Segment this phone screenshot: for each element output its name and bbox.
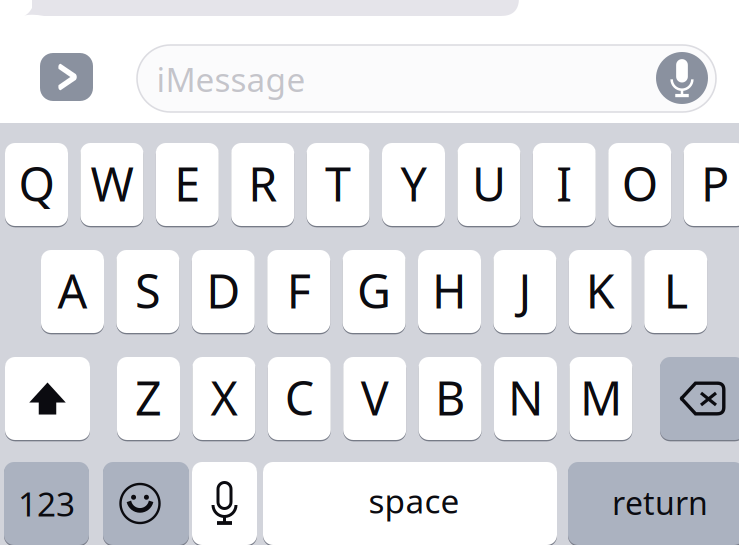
staticText: H [432,259,467,321]
button[interactable]: Dictate [656,52,708,104]
staticText: N [508,366,543,428]
staticText: space [368,478,459,523]
button[interactable]: Delete [660,357,739,440]
staticText: Z [135,366,162,428]
button[interactable]: G [343,250,406,333]
staticText: Y [400,152,426,214]
button[interactable]: A [41,250,104,333]
button[interactable]: E [156,143,219,226]
staticText: X [210,366,237,428]
staticText: T [325,152,351,214]
button[interactable]: Emoji [103,462,189,545]
staticText: E [174,152,200,214]
button[interactable]: K [569,250,632,333]
button[interactable]: V [343,357,406,440]
button[interactable]: R [231,143,294,226]
button[interactable]: N [494,357,557,440]
button[interactable]: I [533,143,596,226]
staticText: I [556,152,572,214]
button[interactable]: F [267,250,330,333]
staticText: R [248,152,277,214]
staticText: A [57,259,87,321]
button[interactable]: Q [5,143,68,226]
button[interactable]: L [644,250,707,333]
button[interactable]: W [80,143,143,226]
button[interactable]: S [116,250,179,333]
staticText: return [612,481,708,524]
staticText: F [287,259,311,321]
staticText: D [206,259,240,321]
button[interactable]: return [568,462,739,545]
staticText: J [518,259,531,321]
staticText: C [285,366,314,428]
button[interactable]: space [263,462,557,545]
staticText: P [701,152,729,214]
staticText: U [472,152,506,214]
staticText: iMessage [156,57,305,101]
button[interactable]: C [268,357,331,440]
button[interactable]: D [192,250,255,333]
button[interactable]: O [608,143,671,226]
staticText: K [586,259,615,321]
staticText: S [135,259,161,321]
button[interactable]: X [192,357,255,440]
staticText: Q [18,152,54,214]
button[interactable]: T [307,143,370,226]
staticText: O [622,152,658,214]
button[interactable]: B [419,357,482,440]
button[interactable]: Z [117,357,180,440]
button[interactable]: Dictation [192,462,257,545]
staticText: M [580,366,622,428]
button[interactable]: H [418,250,481,333]
staticText: L [664,259,688,321]
button[interactable]: P [684,143,739,226]
button[interactable]: Shift [5,357,90,440]
staticText: G [357,259,391,321]
staticText: V [361,366,389,428]
button[interactable]: U [457,143,520,226]
staticText: W [90,152,133,214]
button[interactable]: Y [382,143,445,226]
staticText: B [435,366,465,428]
button[interactable]: M [569,357,632,440]
button[interactable]: J [493,250,556,333]
staticText: 123 [18,481,75,526]
button[interactable]: 123 [4,462,89,545]
button[interactable]: Show apps [40,53,93,101]
